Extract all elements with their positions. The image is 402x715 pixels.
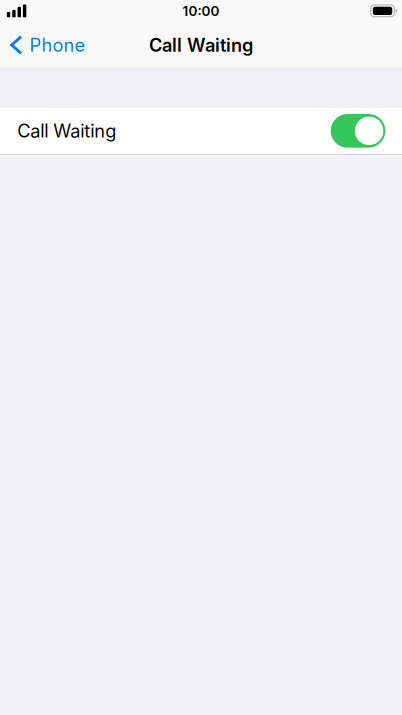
button[interactable]: Call Waiting <box>0 107 402 154</box>
button[interactable]: Back to Phone <box>0 28 95 62</box>
staticText: Call Waiting <box>149 34 253 56</box>
staticText: 10:00 <box>182 3 219 19</box>
staticText: Phone <box>29 34 85 56</box>
staticText: Call Waiting <box>17 120 116 142</box>
button[interactable]: Call Waiting, on <box>331 114 385 148</box>
